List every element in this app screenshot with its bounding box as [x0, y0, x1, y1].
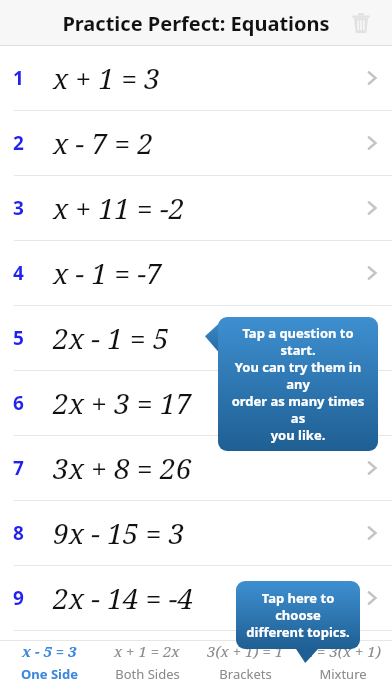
button[interactable]: 3(x + 1) = 1 [196, 641, 294, 683]
staticText: Tap here to choose different topics. [244, 589, 352, 641]
staticText: Mixture [319, 665, 367, 683]
staticText: 4 [13, 260, 24, 286]
staticText: 7 [13, 455, 24, 481]
button[interactable]: 1 [0, 46, 392, 110]
button[interactable]: 7 [0, 436, 392, 500]
button[interactable]: 8 [0, 501, 392, 565]
staticText: 1 [13, 65, 24, 91]
staticText: 3(x + 1) = 1 [207, 641, 284, 661]
button[interactable]: Delete [344, 6, 378, 40]
staticText: 2x + 3 = 17 [53, 384, 352, 422]
button[interactable]: x − 5 = 3 [0, 641, 98, 683]
staticText: x + 1 = 2x [114, 641, 180, 661]
button[interactable]: 2 [0, 111, 392, 175]
staticText: 9x − 15 = 3 [53, 514, 352, 552]
button[interactable]: 9 [0, 566, 392, 630]
staticText: x + 11 = −2 [53, 189, 352, 227]
button[interactable]: 3 [0, 176, 392, 240]
button[interactable]: x + 1 = 2x [98, 641, 196, 683]
staticText: 9 [13, 585, 24, 611]
staticText: 3 [13, 195, 24, 221]
button[interactable]: 6 [0, 371, 392, 435]
staticText: 2x − 14 = −4 [53, 579, 352, 617]
button[interactable]: 5 [0, 306, 392, 370]
staticText: x = 3(x + 1) [305, 641, 381, 661]
staticText: x − 7 = 2 [53, 124, 352, 162]
staticText: One Side [21, 665, 78, 683]
button[interactable]: 4 [0, 241, 392, 305]
staticText: x − 5 = 3 [22, 641, 77, 661]
staticText: 8 [13, 520, 24, 546]
staticText: Both Sides [115, 665, 180, 683]
staticText: 2x − 1 = 5 [53, 319, 352, 357]
button[interactable]: x = 3(x + 1) [294, 641, 392, 683]
staticText: 6 [13, 390, 24, 416]
staticText: Brackets [219, 665, 272, 683]
staticText: x + 1 = 3 [53, 59, 352, 97]
staticText: Practice Perfect: Equations [0, 10, 392, 37]
staticText: 3x + 8 = 26 [53, 449, 352, 487]
staticText: 2 [13, 130, 24, 156]
staticText: x − 1 = −7 [53, 254, 352, 292]
staticText: Tap a question to start. You can try the… [226, 324, 370, 444]
staticText: 5 [13, 325, 24, 351]
